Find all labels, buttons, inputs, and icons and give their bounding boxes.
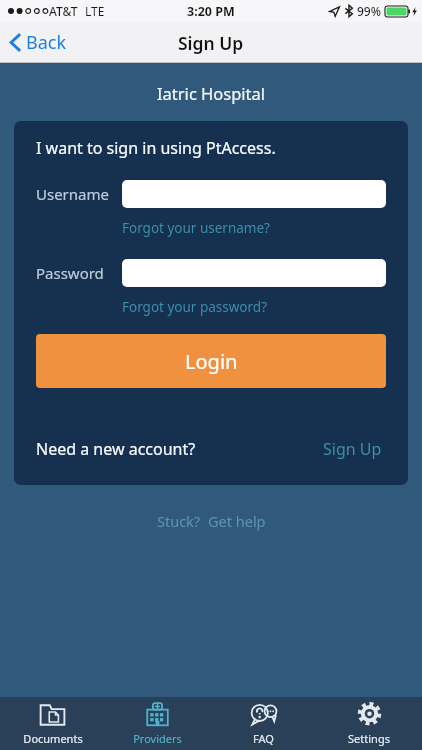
button[interactable]: Stuck?	[147, 507, 276, 535]
staticText: Documents	[23, 731, 83, 746]
button[interactable]: Forgot your password?	[122, 296, 268, 318]
button[interactable]: Username	[122, 180, 386, 208]
staticText: Stuck?	[157, 511, 201, 531]
staticText: FAQ	[253, 731, 274, 746]
staticText: Login	[185, 348, 238, 375]
staticText: Settings	[348, 731, 390, 746]
staticText: Back	[26, 30, 67, 55]
button[interactable]: Providers	[105, 697, 210, 750]
staticText: AT&T	[49, 3, 78, 19]
staticText: LTE	[85, 3, 105, 19]
staticText: Providers	[133, 731, 182, 746]
button[interactable]: Password	[122, 259, 386, 287]
button[interactable]: Forgot your username?	[122, 217, 270, 239]
staticText: Sign Up	[323, 438, 382, 460]
staticText: Sign Up	[178, 31, 244, 55]
staticText: 3:20 PM	[187, 3, 235, 20]
staticText: Need a new account?	[36, 438, 196, 460]
staticText: Get help	[208, 511, 266, 531]
staticText: Iatric Hospital	[157, 82, 266, 104]
staticText: Password	[36, 263, 122, 283]
button[interactable]: FAQ	[210, 697, 316, 750]
button[interactable]: Sign Up	[319, 435, 386, 463]
staticText: I want to sign in using PtAccess.	[36, 137, 276, 159]
button[interactable]: Back	[0, 25, 77, 60]
button[interactable]: Login	[36, 334, 386, 388]
button[interactable]: Documents	[0, 697, 105, 750]
button[interactable]: Settings	[316, 697, 422, 750]
staticText: Username	[36, 184, 122, 204]
staticText: 99%	[357, 3, 381, 19]
